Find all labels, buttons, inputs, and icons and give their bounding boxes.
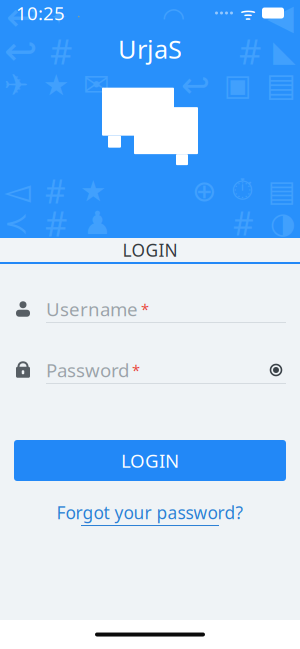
- staticText: Password: [46, 358, 129, 382]
- staticText: 10:25: [16, 1, 65, 25]
- staticText: #: [45, 170, 66, 212]
- staticText: #: [233, 202, 254, 244]
- staticText: ★: [80, 174, 106, 208]
- staticText: ↩: [181, 65, 210, 105]
- staticText: ⏱: [231, 177, 254, 205]
- staticText: ▤: [268, 174, 296, 208]
- staticText: ✦: [50, 5, 68, 29]
- staticText: ◑: [270, 206, 296, 240]
- staticText: UrjaS: [118, 32, 182, 66]
- staticText: *: [132, 360, 140, 380]
- button[interactable]: Show password: [266, 361, 286, 379]
- staticText: 🔒: [78, 16, 80, 18]
- staticText: ↩: [6, 0, 40, 40]
- button[interactable]: LOGIN: [14, 440, 286, 481]
- button[interactable]: LOGIN: [0, 238, 300, 262]
- staticText: ▤: [266, 67, 296, 103]
- staticText: ▣: [224, 68, 252, 102]
- staticText: #: [45, 200, 67, 246]
- staticText: *: [141, 299, 149, 319]
- staticText: ★: [43, 68, 69, 102]
- staticText: ᯤ: [240, 1, 256, 24]
- staticText: Forgot your password?: [56, 501, 243, 524]
- button[interactable]: Forgot your password?: [56, 501, 243, 526]
- staticText: ✈: [4, 68, 29, 102]
- staticText: ◅: [4, 171, 31, 211]
- staticText: ⊕: [192, 174, 217, 208]
- staticText: LOGIN: [121, 448, 179, 473]
- staticText: ♟: [83, 205, 112, 241]
- staticText: ≺: [4, 206, 29, 240]
- staticText: ↩: [4, 28, 38, 74]
- staticText: Username: [46, 297, 138, 321]
- staticText: ✉: [83, 67, 110, 103]
- staticText: LOGIN: [122, 238, 177, 261]
- staticText: #: [50, 28, 72, 74]
- staticText: ◣: [273, 34, 296, 68]
- staticText: ◠: [162, 2, 185, 32]
- staticText: ◀: [267, 0, 294, 37]
- staticText: #: [239, 28, 261, 74]
